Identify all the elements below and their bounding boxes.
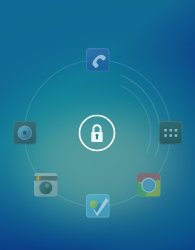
button[interactable]: Phone <box>86 48 110 72</box>
button[interactable]: Instagram <box>34 173 58 197</box>
button[interactable]: Unlock <box>78 114 116 152</box>
button[interactable]: All apps <box>159 121 183 145</box>
button[interactable]: Tasks <box>86 194 110 218</box>
button[interactable]: Chrome <box>137 173 161 197</box>
button[interactable]: Camera <box>13 121 37 145</box>
